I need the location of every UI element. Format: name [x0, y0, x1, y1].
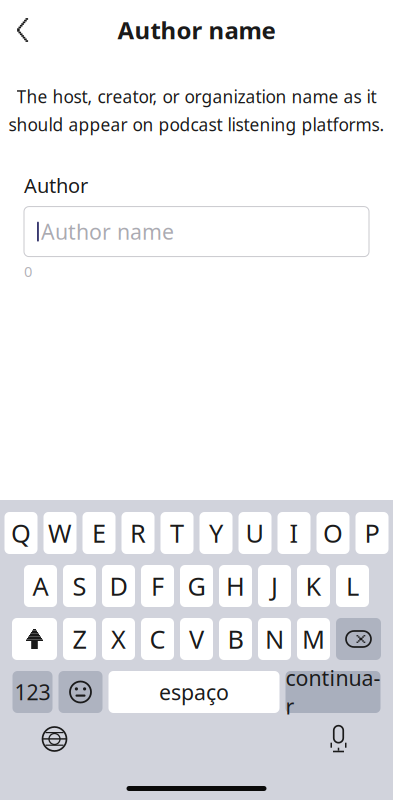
button[interactable]: Next keyboard — [31, 719, 77, 759]
button[interactable]: J — [258, 565, 291, 607]
button[interactable]: H — [219, 565, 252, 607]
button[interactable]: Back — [0, 7, 46, 53]
button[interactable]: C — [141, 618, 174, 660]
staticText: should appear on podcast listening platf… — [8, 113, 384, 136]
staticText: P — [364, 516, 379, 550]
button[interactable]: Continue — [285, 671, 380, 713]
button[interactable]: L — [336, 565, 369, 607]
staticText: 123 — [14, 678, 50, 706]
staticText: Z — [72, 622, 86, 656]
button[interactable]: Y — [199, 512, 232, 554]
button[interactable]: T — [160, 512, 193, 554]
staticText: X — [111, 622, 126, 656]
staticText: I — [289, 516, 298, 550]
staticText: G — [187, 569, 205, 603]
button[interactable]: Dictate — [315, 719, 361, 759]
staticText: U — [245, 516, 264, 550]
staticText: Author name — [117, 14, 275, 46]
staticText: L — [346, 569, 359, 603]
button[interactable]: G — [180, 565, 213, 607]
button[interactable]: Space — [108, 671, 279, 713]
button[interactable]: B — [219, 618, 252, 660]
button[interactable]: Backspace — [336, 618, 381, 660]
staticText: H — [226, 569, 245, 603]
staticText: K — [305, 569, 321, 603]
staticText: E — [92, 516, 106, 550]
button[interactable]: W — [43, 512, 76, 554]
button[interactable]: Q — [4, 512, 37, 554]
staticText: espaço — [159, 678, 229, 706]
button[interactable]: X — [102, 618, 135, 660]
button[interactable]: U — [238, 512, 271, 554]
staticText: T — [170, 516, 184, 550]
button[interactable]: Numbers — [12, 671, 52, 713]
button[interactable]: F — [141, 565, 174, 607]
staticText: S — [72, 569, 86, 603]
staticText: N — [265, 622, 284, 656]
button[interactable]: K — [297, 565, 330, 607]
staticText: O — [323, 516, 343, 550]
staticText: M — [302, 622, 325, 656]
button[interactable]: Z — [63, 618, 96, 660]
button[interactable]: M — [297, 618, 330, 660]
staticText: V — [189, 622, 204, 656]
button[interactable]: S — [63, 565, 96, 607]
staticText: B — [227, 622, 243, 656]
staticText: F — [151, 569, 164, 603]
staticText: Author — [24, 172, 88, 199]
staticText: D — [109, 569, 127, 603]
staticText: Y — [209, 516, 223, 550]
button[interactable]: N — [258, 618, 291, 660]
staticText: J — [271, 569, 278, 603]
button[interactable]: V — [180, 618, 213, 660]
staticText: R — [130, 516, 146, 550]
button[interactable]: O — [316, 512, 349, 554]
staticText: C — [149, 622, 165, 656]
staticText: W — [48, 516, 72, 550]
button[interactable]: P — [355, 512, 388, 554]
button[interactable]: Emoji — [58, 671, 102, 713]
staticText: Author name — [41, 217, 174, 246]
staticText: continuar — [285, 664, 380, 720]
button[interactable]: A — [24, 565, 57, 607]
button[interactable]: I — [277, 512, 310, 554]
button[interactable]: R — [121, 512, 154, 554]
staticText: The host, creator, or organization name … — [16, 85, 376, 108]
staticText: Q — [11, 516, 31, 550]
button[interactable]: Shift — [12, 618, 57, 660]
staticText: 0 — [24, 262, 32, 281]
button[interactable]: D — [102, 565, 135, 607]
staticText: A — [32, 569, 48, 603]
button[interactable]: E — [82, 512, 115, 554]
